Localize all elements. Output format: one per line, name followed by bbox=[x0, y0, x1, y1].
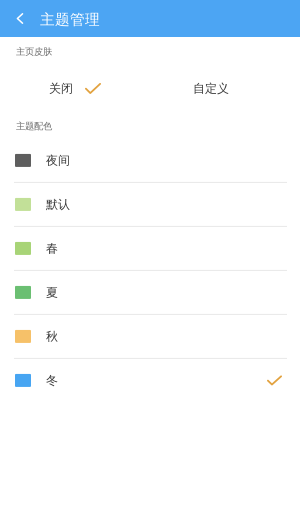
staticText: 主页皮肤 bbox=[16, 46, 52, 57]
staticText: 主题配色 bbox=[16, 120, 52, 132]
button[interactable]: 冬 bbox=[0, 359, 300, 403]
staticText: 夏 bbox=[46, 285, 58, 300]
staticText: 冬 bbox=[46, 373, 58, 388]
button[interactable]: 默认 bbox=[0, 183, 300, 227]
button[interactable]: 夜间 bbox=[0, 139, 300, 183]
staticText: 秋 bbox=[46, 329, 58, 344]
button[interactable]: 关闭 bbox=[0, 72, 150, 104]
staticText: 关闭 bbox=[49, 81, 73, 96]
button[interactable]: 自定义 bbox=[150, 72, 300, 104]
staticText: 自定义 bbox=[193, 81, 229, 96]
staticText: 主题管理 bbox=[40, 10, 100, 28]
button[interactable]: 秋 bbox=[0, 315, 300, 359]
staticText: 夜间 bbox=[46, 153, 70, 168]
button[interactable]: 春 bbox=[0, 227, 300, 271]
staticText: 春 bbox=[46, 241, 58, 256]
staticText: 默认 bbox=[46, 197, 70, 212]
button[interactable]: Back bbox=[0, 0, 38, 37]
button[interactable]: 夏 bbox=[0, 271, 300, 315]
